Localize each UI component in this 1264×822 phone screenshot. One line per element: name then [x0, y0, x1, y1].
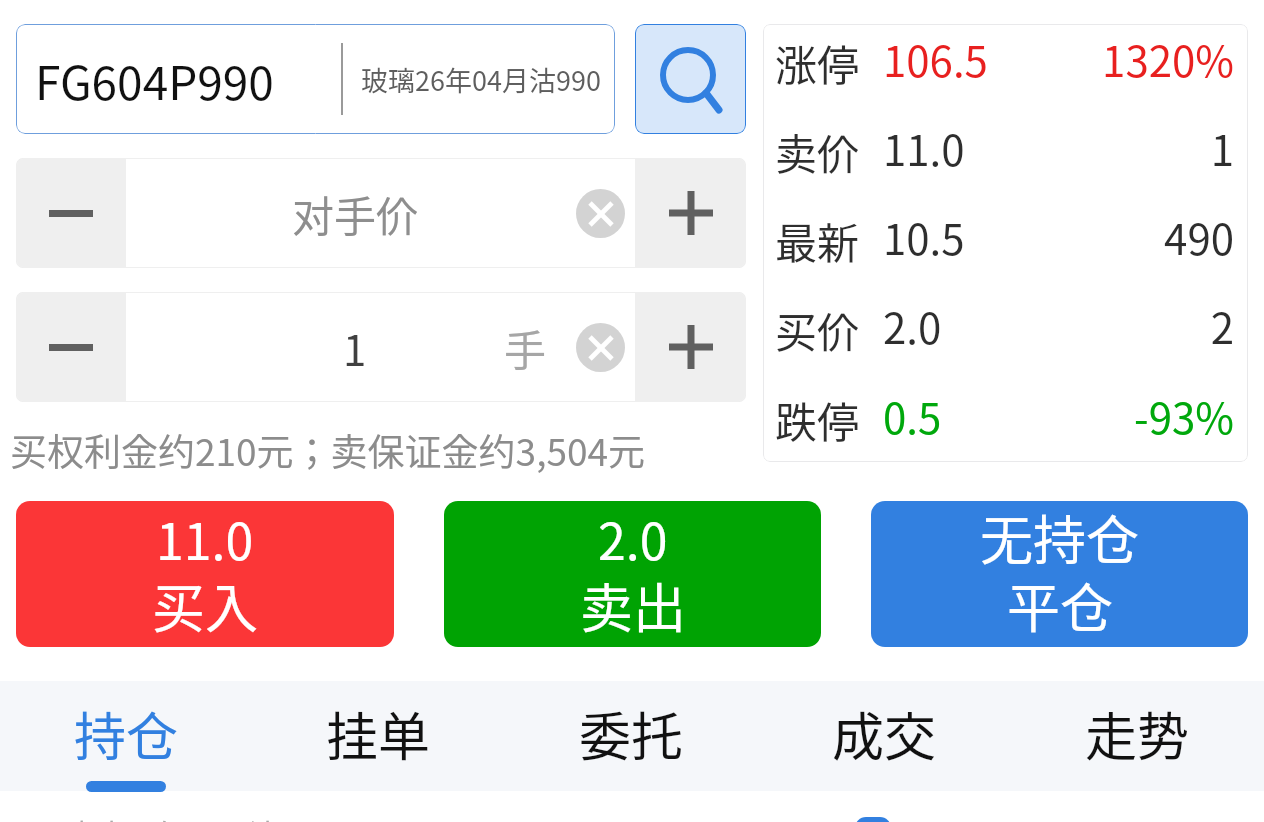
staticText: 无持仓 [980, 501, 1139, 576]
staticText: 11.0 [156, 502, 254, 574]
staticText: 成交 [832, 696, 937, 771]
button[interactable]: Decrease [16, 292, 126, 402]
button[interactable]: Search [635, 24, 746, 134]
staticText: 1320% [763, 28, 1234, 89]
button[interactable]: Increase [635, 158, 746, 268]
staticText: 对手价 [292, 183, 419, 244]
staticText: 持仓 [74, 696, 179, 771]
button[interactable]: 玻璃26年04月沽990 [0, 800, 1264, 822]
button[interactable]: 无持仓 [871, 501, 1248, 647]
staticText: 1 [343, 317, 367, 378]
staticText: 最新 [775, 210, 860, 271]
button[interactable]: 2.0 [444, 501, 821, 647]
staticText: 11.0 [883, 117, 965, 178]
button[interactable]: 11.0 [16, 501, 394, 647]
button[interactable]: Clear [576, 189, 625, 238]
staticText: 买价 [775, 299, 860, 360]
button[interactable]: Decrease [16, 158, 126, 268]
button[interactable]: 持仓 [0, 681, 252, 791]
staticText: 490 [763, 206, 1234, 267]
button[interactable]: Clear [576, 323, 625, 372]
staticText: 走势 [1085, 696, 1190, 771]
staticText: 跌停 [775, 389, 860, 450]
button[interactable]: FG604P990 [16, 24, 615, 134]
staticText: 0.5 [883, 385, 942, 446]
staticText: FG604P990 [35, 47, 274, 114]
staticText: -93% [763, 385, 1234, 446]
staticText: 手 [504, 317, 547, 378]
button[interactable]: 成交 [758, 681, 1011, 791]
staticText: 卖价 [775, 121, 860, 182]
staticText: 涨停 [775, 32, 860, 93]
staticText: 委托 [579, 696, 684, 771]
button[interactable]: Increase [635, 292, 746, 402]
staticText: 1 [763, 117, 1234, 178]
button[interactable]: 挂单 [252, 681, 505, 791]
button[interactable]: 委托 [505, 681, 758, 791]
staticText: 2.0 [598, 502, 668, 574]
staticText: 2.0 [883, 295, 942, 356]
staticText: 平仓 [1007, 567, 1113, 644]
staticText: 玻璃26年04月沽990 [62, 811, 329, 822]
staticText: 10.5 [883, 206, 965, 267]
staticText: 挂单 [326, 696, 431, 771]
button[interactable] [126, 158, 635, 268]
staticText: 106.5 [883, 28, 988, 89]
staticText: 玻璃26年04月沽990 [361, 60, 601, 99]
button[interactable]: 走势 [1011, 681, 1264, 791]
staticText: 2 [763, 295, 1234, 356]
button[interactable] [126, 292, 635, 402]
staticText: 卖出 [580, 567, 686, 644]
staticText: 买权利金约210元；卖保证金约3,504元 [10, 423, 646, 477]
staticText: 买入 [152, 567, 258, 644]
